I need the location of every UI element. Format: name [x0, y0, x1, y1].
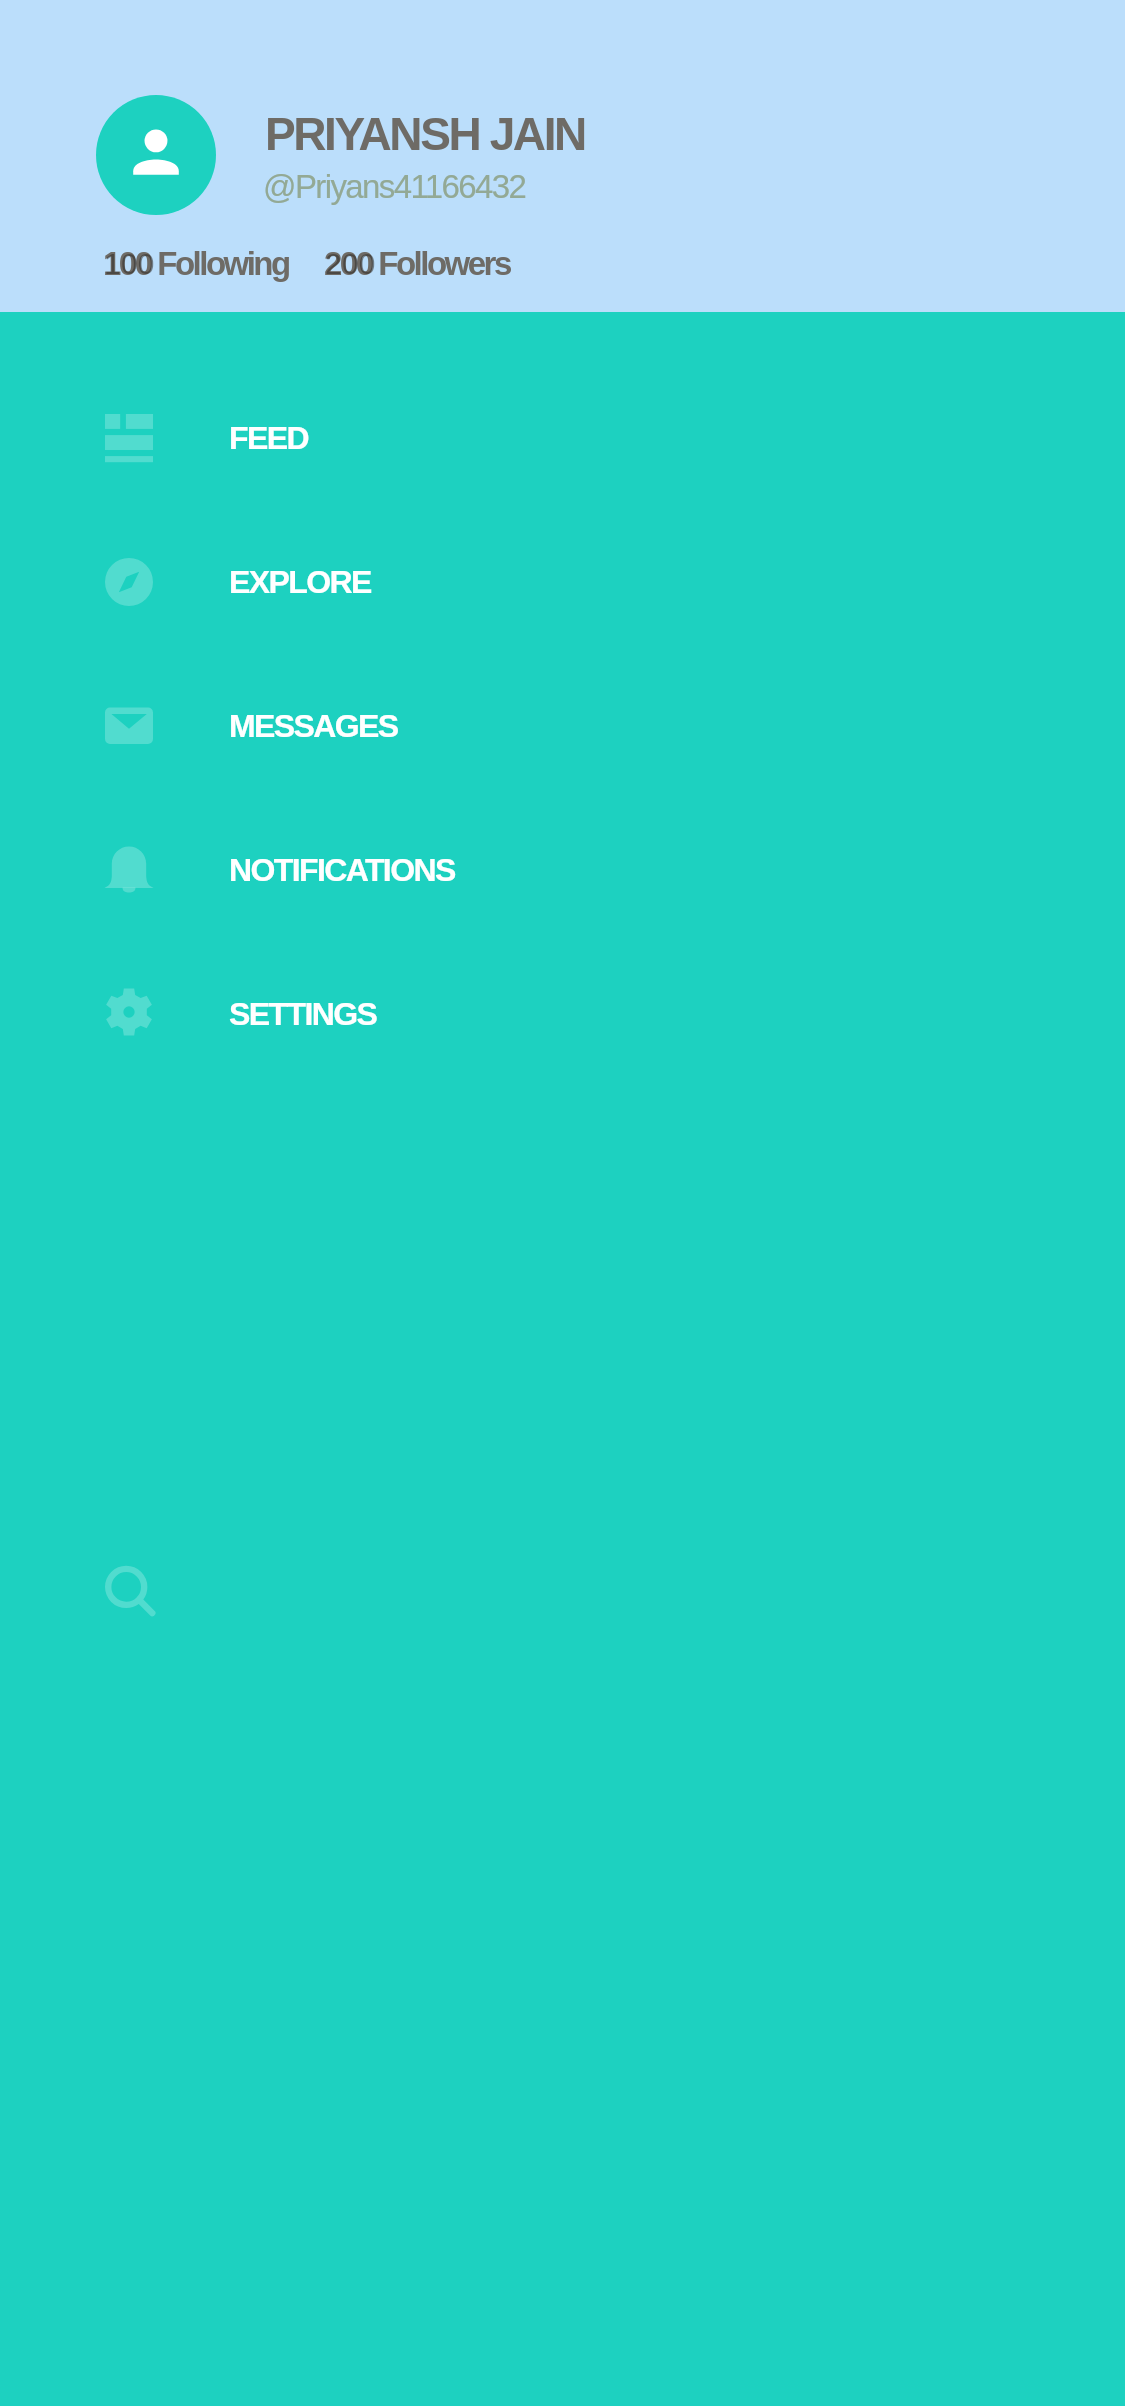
staticText: EXPLORE — [229, 564, 371, 600]
button[interactable]: Search — [101, 1562, 157, 1618]
staticText: 100 Following — [103, 245, 289, 282]
staticText: PRIYANSH JAIN — [265, 108, 585, 159]
button[interactable]: 100 Following — [103, 245, 289, 282]
button[interactable]: SETTINGS — [0, 942, 1125, 1086]
button[interactable]: FEED — [0, 366, 1125, 510]
staticText: FEED — [229, 420, 308, 456]
staticText: NOTIFICATIONS — [229, 852, 455, 888]
staticText: 200 Followers — [324, 245, 510, 282]
button[interactable]: EXPLORE — [0, 510, 1125, 654]
staticText: 200 — [325, 247, 376, 281]
staticText: 100 — [104, 247, 155, 281]
button[interactable]: MESSAGES — [0, 654, 1125, 798]
staticText: MESSAGES — [229, 708, 398, 744]
staticText: SETTINGS — [229, 996, 377, 1032]
button[interactable]: NOTIFICATIONS — [0, 798, 1125, 942]
button[interactable]: 200 Followers — [324, 245, 510, 282]
staticText: @Priyans41166432 — [263, 168, 526, 205]
button[interactable]: Profile picture — [96, 95, 216, 215]
